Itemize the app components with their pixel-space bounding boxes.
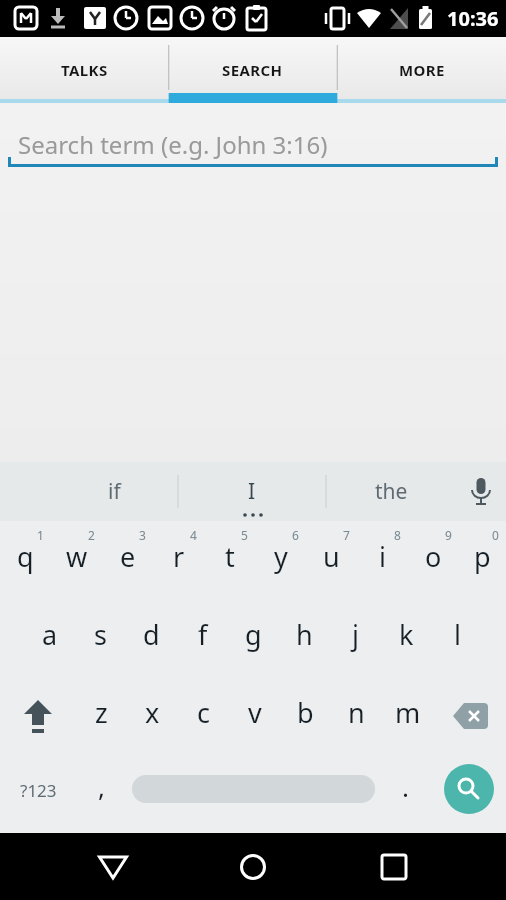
button[interactable]	[337, 833, 506, 900]
button[interactable]: i	[357, 521, 408, 599]
button[interactable]: p	[459, 521, 506, 599]
staticText: a	[42, 616, 58, 653]
staticText: q	[17, 538, 34, 575]
button[interactable]: j	[330, 599, 381, 677]
staticText: t	[225, 538, 235, 575]
button[interactable]: s	[75, 599, 126, 677]
button[interactable]: I	[178, 462, 326, 521]
button[interactable]: e	[102, 521, 153, 599]
button[interactable]: r	[153, 521, 204, 599]
staticText: l	[454, 616, 461, 653]
staticText: if	[108, 477, 121, 506]
button[interactable]: if	[0, 462, 178, 521]
staticText: g	[245, 616, 262, 653]
button[interactable]	[0, 677, 76, 755]
staticText: b	[297, 694, 314, 731]
button[interactable]	[444, 764, 494, 814]
button[interactable]: q	[0, 521, 51, 599]
button[interactable]: o	[408, 521, 459, 599]
staticText: n	[348, 694, 365, 731]
button[interactable]: a	[24, 599, 75, 677]
button[interactable]: z	[76, 677, 127, 755]
staticText: 9	[445, 527, 452, 543]
staticText: TALKS	[61, 60, 108, 80]
staticText: ,	[98, 769, 105, 804]
button[interactable]: v	[229, 677, 280, 755]
staticText: 1	[37, 527, 44, 543]
button[interactable]	[127, 755, 380, 833]
button[interactable]: m	[382, 677, 433, 755]
button[interactable]	[433, 677, 506, 755]
staticText: Search term (e.g. John 3:16)	[18, 128, 328, 161]
staticText: j	[352, 616, 359, 653]
button[interactable]: TALKS	[0, 37, 168, 103]
button[interactable]: t	[204, 521, 255, 599]
button[interactable]: h	[279, 599, 330, 677]
button[interactable]: k	[381, 599, 432, 677]
staticText: the	[375, 477, 408, 506]
staticText: 2	[88, 527, 95, 543]
staticText: 4	[190, 527, 197, 543]
staticText: c	[197, 694, 210, 731]
staticText: u	[323, 538, 340, 575]
staticText: ?123	[20, 779, 57, 802]
staticText: 0	[492, 527, 499, 543]
button[interactable]: .	[380, 755, 431, 833]
button[interactable]: u	[306, 521, 357, 599]
staticText: w	[66, 538, 88, 575]
staticText: e	[120, 538, 136, 575]
staticText: k	[399, 616, 414, 653]
button[interactable]: ?123	[0, 755, 76, 833]
staticText: .	[402, 769, 409, 804]
button[interactable]	[168, 833, 337, 900]
staticText: i	[379, 538, 386, 575]
staticText: h	[296, 616, 313, 653]
button[interactable]: d	[126, 599, 177, 677]
button[interactable]: l	[432, 599, 483, 677]
staticText: r	[173, 538, 185, 575]
staticText: f	[198, 616, 208, 653]
staticText: SEARCH	[222, 60, 283, 80]
button[interactable]: c	[178, 677, 229, 755]
staticText: 5	[241, 527, 248, 543]
staticText: x	[145, 694, 160, 731]
button[interactable]: w	[51, 521, 102, 599]
button[interactable]	[0, 833, 168, 900]
button[interactable]: g	[228, 599, 279, 677]
staticText: m	[395, 694, 421, 731]
staticText: 6	[292, 527, 299, 543]
button[interactable]	[456, 462, 506, 521]
staticText: 3	[139, 527, 146, 543]
staticText: I	[248, 477, 256, 506]
staticText: 7	[343, 527, 350, 543]
staticText: v	[248, 694, 262, 731]
button[interactable]: the	[326, 462, 456, 521]
staticText: d	[143, 616, 160, 653]
button[interactable]: Search term (e.g. John 3:16)	[8, 103, 498, 167]
button[interactable]: ,	[76, 755, 127, 833]
staticText: p	[474, 538, 491, 575]
button[interactable]: n	[331, 677, 382, 755]
staticText: MORE	[399, 60, 445, 80]
staticText: o	[425, 538, 442, 575]
staticText: s	[94, 616, 107, 653]
staticText: z	[95, 694, 108, 731]
button[interactable]: b	[280, 677, 331, 755]
button[interactable]: x	[127, 677, 178, 755]
button[interactable]: y	[255, 521, 306, 599]
staticText: y	[274, 538, 288, 575]
staticText: 8	[394, 527, 401, 543]
button[interactable]: SEARCH	[168, 37, 337, 103]
button[interactable]: f	[177, 599, 228, 677]
button[interactable]: MORE	[337, 37, 506, 103]
staticText: 10:36	[447, 5, 499, 32]
